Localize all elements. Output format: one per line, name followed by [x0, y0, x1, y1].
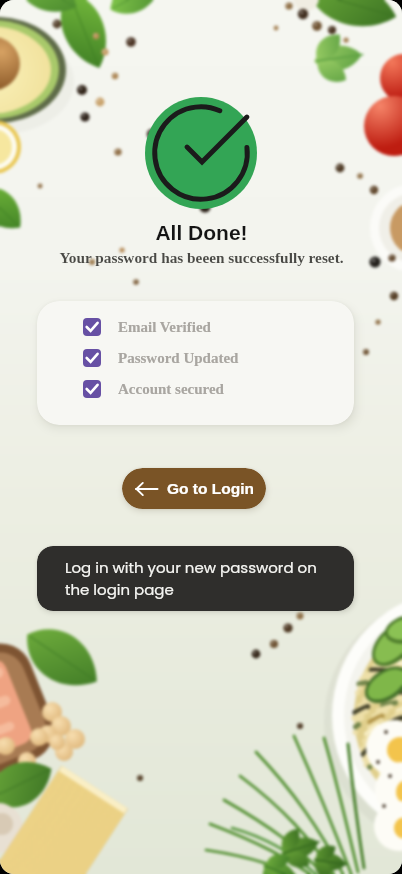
button[interactable]: Account secured	[83, 380, 224, 398]
button[interactable]: Password Updated	[83, 349, 239, 367]
staticText: All Done!	[155, 221, 248, 244]
staticText: Email Verified	[118, 319, 211, 336]
button[interactable]: Go to Login	[122, 468, 266, 509]
staticText: Account secured	[118, 381, 224, 398]
staticText: Go to Login	[167, 480, 254, 497]
staticText: Your password has beeen successfully res…	[59, 249, 344, 266]
staticText: Log in with your new password on the log…	[65, 557, 334, 600]
button[interactable]: Email Verified	[83, 318, 211, 336]
staticText: Password Updated	[118, 350, 239, 367]
